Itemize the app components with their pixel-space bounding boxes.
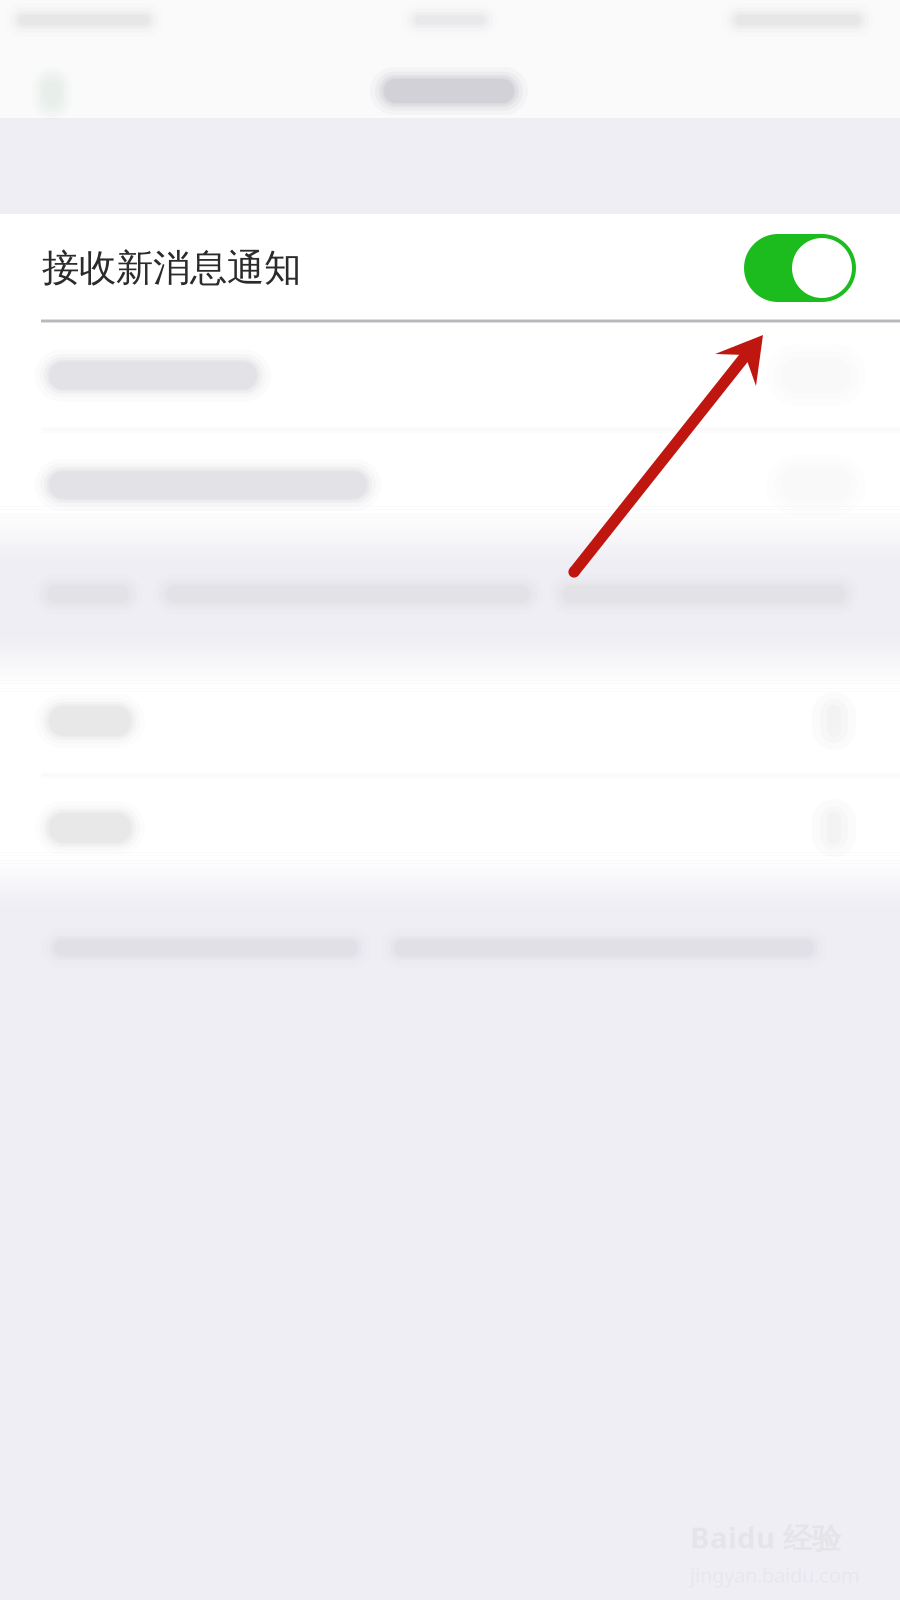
button[interactable]	[0, 430, 900, 540]
button[interactable]	[0, 321, 900, 430]
button[interactable]	[0, 667, 900, 774]
staticText: Baidu 经验	[690, 1518, 841, 1557]
staticText: 接收新消息通知	[42, 245, 301, 291]
button[interactable]	[0, 774, 900, 881]
button[interactable]: 接收新消息通知	[0, 214, 900, 321]
button[interactable]: Back	[11, 53, 93, 133]
